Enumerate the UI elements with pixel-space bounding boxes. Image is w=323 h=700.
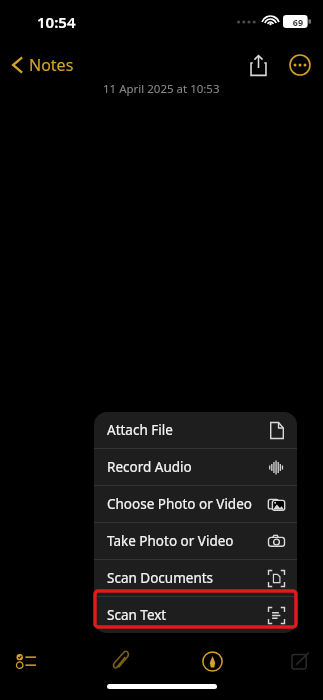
staticText: Record Audio [107, 458, 268, 476]
staticText: Take Photo or Video [107, 532, 268, 550]
staticText: Scan Text [107, 606, 268, 624]
staticText: 10:54 [37, 12, 76, 32]
button[interactable]: Markup [190, 639, 234, 683]
button[interactable]: New note [278, 639, 322, 683]
button[interactable]: Scan Documents [94, 560, 297, 596]
button[interactable]: Scan Text [94, 597, 297, 633]
button[interactable]: Checklist [4, 639, 48, 683]
button[interactable]: Record Audio [94, 449, 297, 485]
button[interactable]: Share [238, 45, 278, 85]
button[interactable]: Take Photo or Video [94, 523, 297, 559]
button[interactable]: More options [280, 45, 320, 85]
button[interactable]: Notes [6, 45, 103, 85]
button[interactable]: Choose Photo or Video [94, 486, 297, 522]
staticText: Notes [29, 54, 74, 76]
button[interactable]: Attach File [94, 412, 297, 448]
staticText: 11 April 2025 at 10:53 [103, 81, 220, 97]
staticText: Attach File [107, 421, 268, 439]
staticText: Choose Photo or Video [107, 495, 268, 513]
staticText: 69 [286, 16, 310, 28]
button[interactable]: Attach [98, 639, 142, 683]
staticText: Scan Documents [107, 569, 268, 587]
